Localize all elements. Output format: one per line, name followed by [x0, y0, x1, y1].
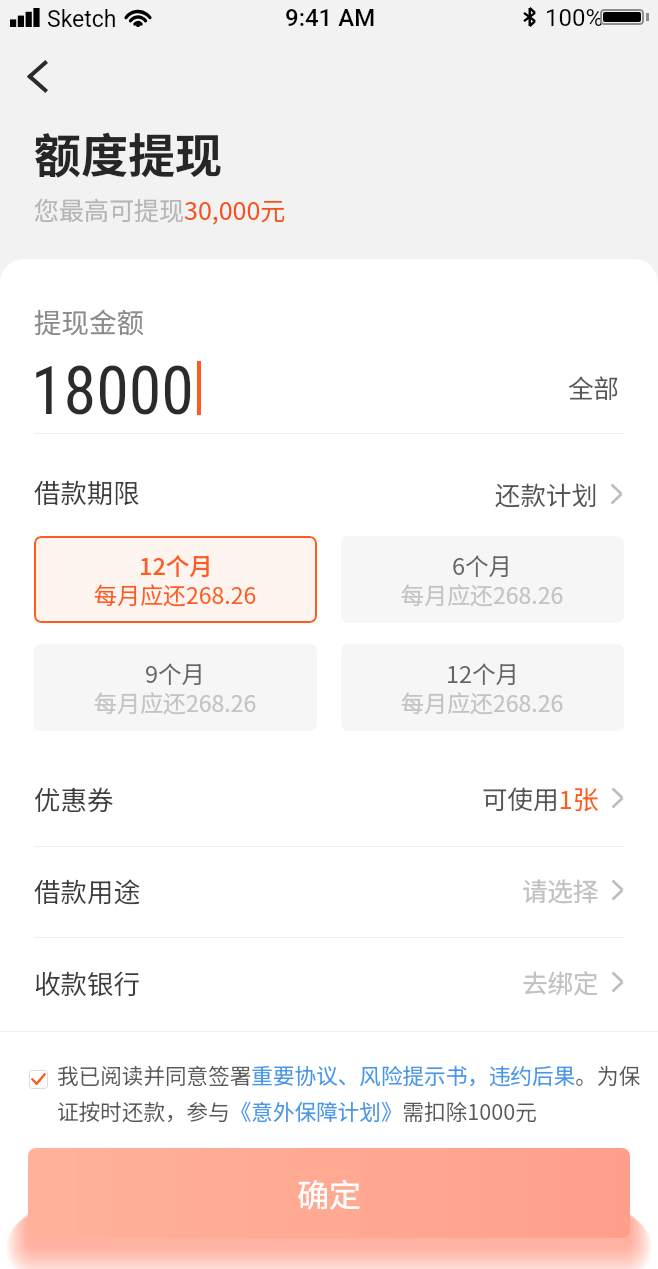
staticText: 可使用1张 [482, 779, 599, 816]
button[interactable]: 优惠券 [0, 754, 658, 847]
button[interactable]: 12个月 [341, 644, 624, 731]
button[interactable]: 12个月 [34, 536, 317, 623]
staticText: 每月应还268.26 [94, 685, 257, 718]
staticText: 每月应还268.26 [94, 577, 257, 610]
button[interactable]: 还款计划 [495, 475, 623, 512]
staticText: 请选择 [522, 871, 599, 908]
staticText: 借款期限 [34, 472, 140, 510]
staticText: 9个月 [145, 656, 206, 690]
button[interactable]: 6个月 [341, 536, 624, 623]
staticText: 9:41 AM [285, 4, 376, 32]
staticText: 额度提现 [34, 118, 222, 186]
staticText: 100% [545, 4, 604, 32]
button[interactable]: 9个月 [34, 644, 317, 731]
button[interactable]: Agree to terms checkbox [29, 1070, 48, 1089]
staticText: 每月应还268.26 [401, 685, 564, 718]
button[interactable]: 全部 [564, 364, 624, 409]
staticText: 优惠券 [34, 779, 114, 817]
button[interactable]: 确定 [28, 1148, 630, 1238]
button[interactable]: 收款银行 [0, 938, 658, 1031]
staticText: 收款银行 [34, 963, 140, 1001]
staticText: 每月应还268.26 [401, 577, 564, 610]
staticText: 您最高可提现30,000元 [34, 191, 286, 227]
staticText: 提现金额 [34, 301, 144, 341]
staticText: 去绑定 [522, 963, 599, 1000]
staticText: 12个月 [446, 656, 520, 690]
staticText: 18000 [31, 353, 194, 430]
staticText: 6个月 [452, 548, 513, 582]
staticText: 全部 [568, 368, 620, 405]
staticText: 我已阅读并同意签署重要协议、风险提示书，违约后果。为保证按时还款，参与《意外保障… [57, 1059, 647, 1126]
staticText: 还款计划 [495, 475, 598, 512]
button[interactable]: 借款用途 [0, 847, 658, 938]
staticText: 12个月 [139, 548, 213, 582]
button[interactable]: Back [6, 50, 68, 102]
staticText: 确定 [297, 1170, 362, 1216]
staticText: Sketch [47, 6, 117, 33]
staticText: 借款用途 [34, 871, 140, 909]
